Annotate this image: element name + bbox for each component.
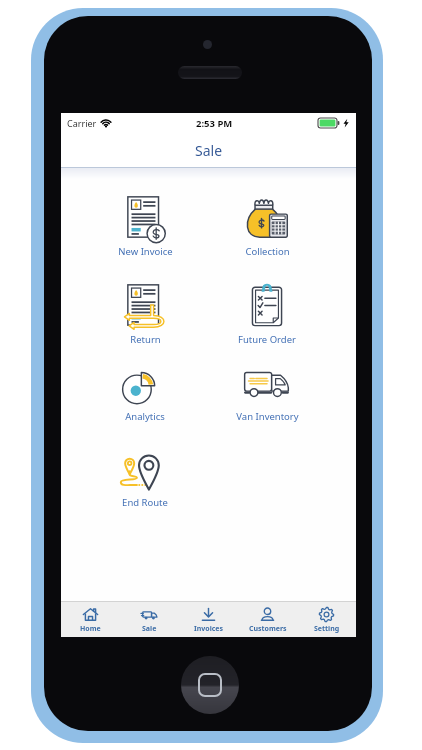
staticText: Setting xyxy=(314,624,340,634)
button[interactable]: Invoices xyxy=(179,602,238,637)
button[interactable]: New Invoice xyxy=(90,193,200,255)
staticText: Analytics xyxy=(125,410,165,423)
staticText: Collection xyxy=(245,245,290,258)
staticText: 2:53 PM xyxy=(196,117,233,130)
staticText: End Route xyxy=(122,496,168,509)
button[interactable]: Future Order xyxy=(212,281,322,343)
button[interactable]: Collection xyxy=(212,193,322,255)
button[interactable]: Home xyxy=(61,602,120,637)
other: Home button xyxy=(181,656,239,714)
staticText: Home xyxy=(80,624,101,634)
button[interactable]: Customers xyxy=(238,602,297,637)
staticText: Future Order xyxy=(238,333,296,346)
staticText: Invoices xyxy=(194,624,224,634)
staticText: Return xyxy=(130,333,161,346)
button[interactable]: Van Inventory xyxy=(212,358,322,420)
button[interactable]: Analytics xyxy=(90,358,200,420)
staticText: Van Inventory xyxy=(236,410,299,423)
staticText: Customers xyxy=(249,624,287,634)
staticText: Carrier xyxy=(67,117,97,129)
button[interactable]: End Route xyxy=(90,444,200,506)
button[interactable]: Sale xyxy=(120,602,179,637)
button[interactable]: Return xyxy=(90,281,200,343)
staticText: Sale xyxy=(195,141,223,160)
button[interactable]: Setting xyxy=(297,602,356,637)
staticText: Sale xyxy=(142,624,157,634)
staticText: New Invoice xyxy=(118,245,173,258)
